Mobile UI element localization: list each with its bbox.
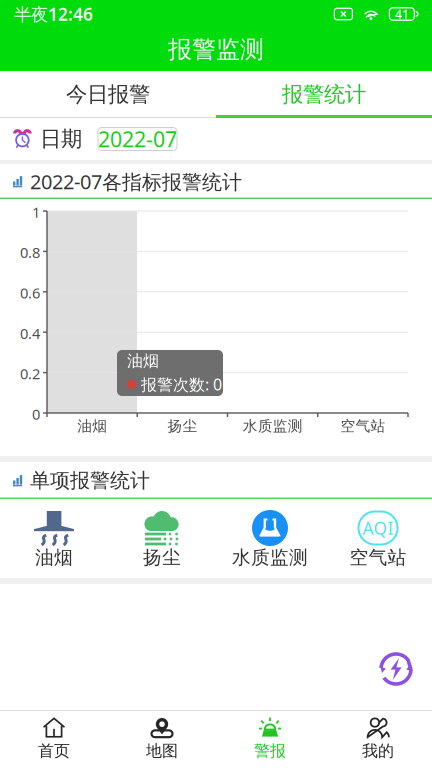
button[interactable]: 首页 bbox=[0, 710, 108, 768]
staticText: 报警监测 bbox=[168, 35, 264, 64]
staticText: 水质监测 bbox=[232, 546, 308, 569]
button[interactable]: 警报 bbox=[216, 710, 324, 768]
staticText: 单项报警统计 bbox=[30, 468, 150, 493]
button[interactable]: 2022-07 bbox=[98, 127, 177, 150]
staticText: 41 bbox=[395, 6, 409, 22]
staticText: 扬尘 bbox=[167, 417, 197, 435]
staticText: 扬尘 bbox=[143, 546, 181, 569]
staticText: 我的 bbox=[362, 741, 394, 761]
button[interactable]: Refresh bbox=[377, 650, 432, 710]
staticText: 警报 bbox=[254, 741, 286, 761]
staticText: 首页 bbox=[38, 741, 70, 761]
staticText: 油烟 bbox=[77, 417, 107, 435]
staticText: 今日报警 bbox=[66, 81, 150, 108]
staticText: 水质监测 bbox=[243, 417, 303, 435]
staticText: 半夜12:46 bbox=[14, 2, 93, 25]
staticText: 空气站 bbox=[340, 417, 385, 435]
staticText: 2022-07 bbox=[98, 125, 177, 153]
button[interactable]: 报警统计 bbox=[216, 71, 432, 118]
staticText: 报警统计 bbox=[282, 81, 366, 108]
staticText: AQI bbox=[362, 516, 393, 539]
staticText: 日期 bbox=[40, 126, 82, 152]
button[interactable]: 我的 bbox=[324, 710, 432, 768]
staticText: 0.8 bbox=[20, 243, 40, 262]
staticText: 0.2 bbox=[20, 364, 40, 383]
staticText: 油烟 bbox=[127, 351, 159, 371]
staticText: 空气站 bbox=[349, 546, 406, 569]
button[interactable]: 油烟 bbox=[0, 499, 108, 578]
staticText: 地图 bbox=[146, 741, 178, 761]
staticText: 报警次数: 0 bbox=[141, 374, 222, 395]
staticText: 1 bbox=[32, 202, 40, 222]
staticText: 0.4 bbox=[20, 323, 40, 343]
button[interactable]: 今日报警 bbox=[0, 71, 216, 118]
button[interactable]: 水质监测 bbox=[216, 499, 324, 578]
staticText: 油烟 bbox=[35, 546, 73, 569]
staticText: 0.6 bbox=[20, 283, 40, 303]
staticText: 2022-07各指标报警统计 bbox=[30, 168, 242, 195]
button[interactable]: AQI bbox=[324, 499, 432, 578]
button[interactable]: 扬尘 bbox=[108, 499, 216, 578]
button[interactable]: 地图 bbox=[108, 710, 216, 768]
staticText: 0 bbox=[32, 404, 40, 424]
